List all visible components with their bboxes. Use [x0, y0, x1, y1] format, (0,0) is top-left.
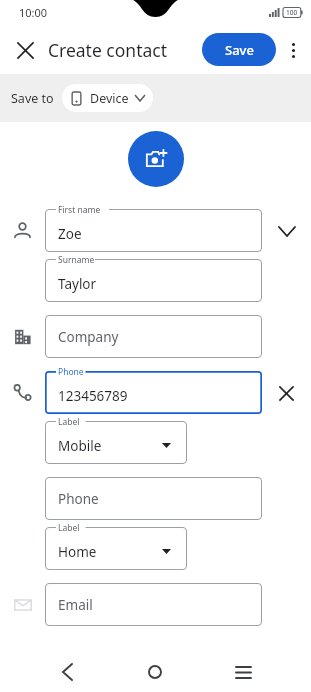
button[interactable]: Phone [45, 477, 262, 520]
staticText: 10:00 [19, 5, 48, 20]
staticText: Phone [58, 366, 84, 378]
button[interactable]: Surname [45, 259, 262, 302]
button[interactable]: Label [45, 421, 187, 464]
button[interactable]: Phone [45, 371, 262, 414]
button[interactable]: First name [45, 209, 262, 252]
staticText: Save to [11, 90, 54, 107]
button[interactable]: Action [262, 211, 311, 251]
staticText: Zoe [58, 225, 82, 243]
staticText: Email [58, 596, 93, 614]
button[interactable]: Save [202, 33, 276, 66]
staticText: Phone [58, 490, 99, 508]
button[interactable]: Close [8, 33, 42, 67]
button[interactable]: Home [111, 654, 199, 690]
button[interactable]: Add photo [128, 131, 184, 187]
button[interactable]: Back [24, 654, 111, 690]
button[interactable]: Action [262, 373, 311, 413]
button[interactable]: Email [45, 583, 262, 626]
staticText: 123456789 [58, 387, 128, 405]
staticText: Label [58, 522, 80, 534]
staticText: Company [58, 328, 119, 346]
staticText: Create contact [48, 38, 168, 62]
staticText: Save [225, 41, 254, 59]
button[interactable]: Label [45, 527, 187, 570]
button[interactable]: Company [45, 315, 262, 358]
staticText: Taylor [58, 275, 97, 293]
button[interactable]: Recent apps [199, 654, 287, 690]
button[interactable]: More options [277, 34, 309, 66]
button[interactable]: Device [62, 84, 153, 112]
staticText: Device [90, 90, 129, 107]
staticText: First name [58, 204, 101, 216]
staticText: Label [58, 416, 80, 428]
staticText: 100 [286, 8, 298, 17]
staticText: Mobile [58, 437, 102, 455]
staticText: Surname [58, 254, 95, 266]
staticText: Home [58, 543, 97, 561]
